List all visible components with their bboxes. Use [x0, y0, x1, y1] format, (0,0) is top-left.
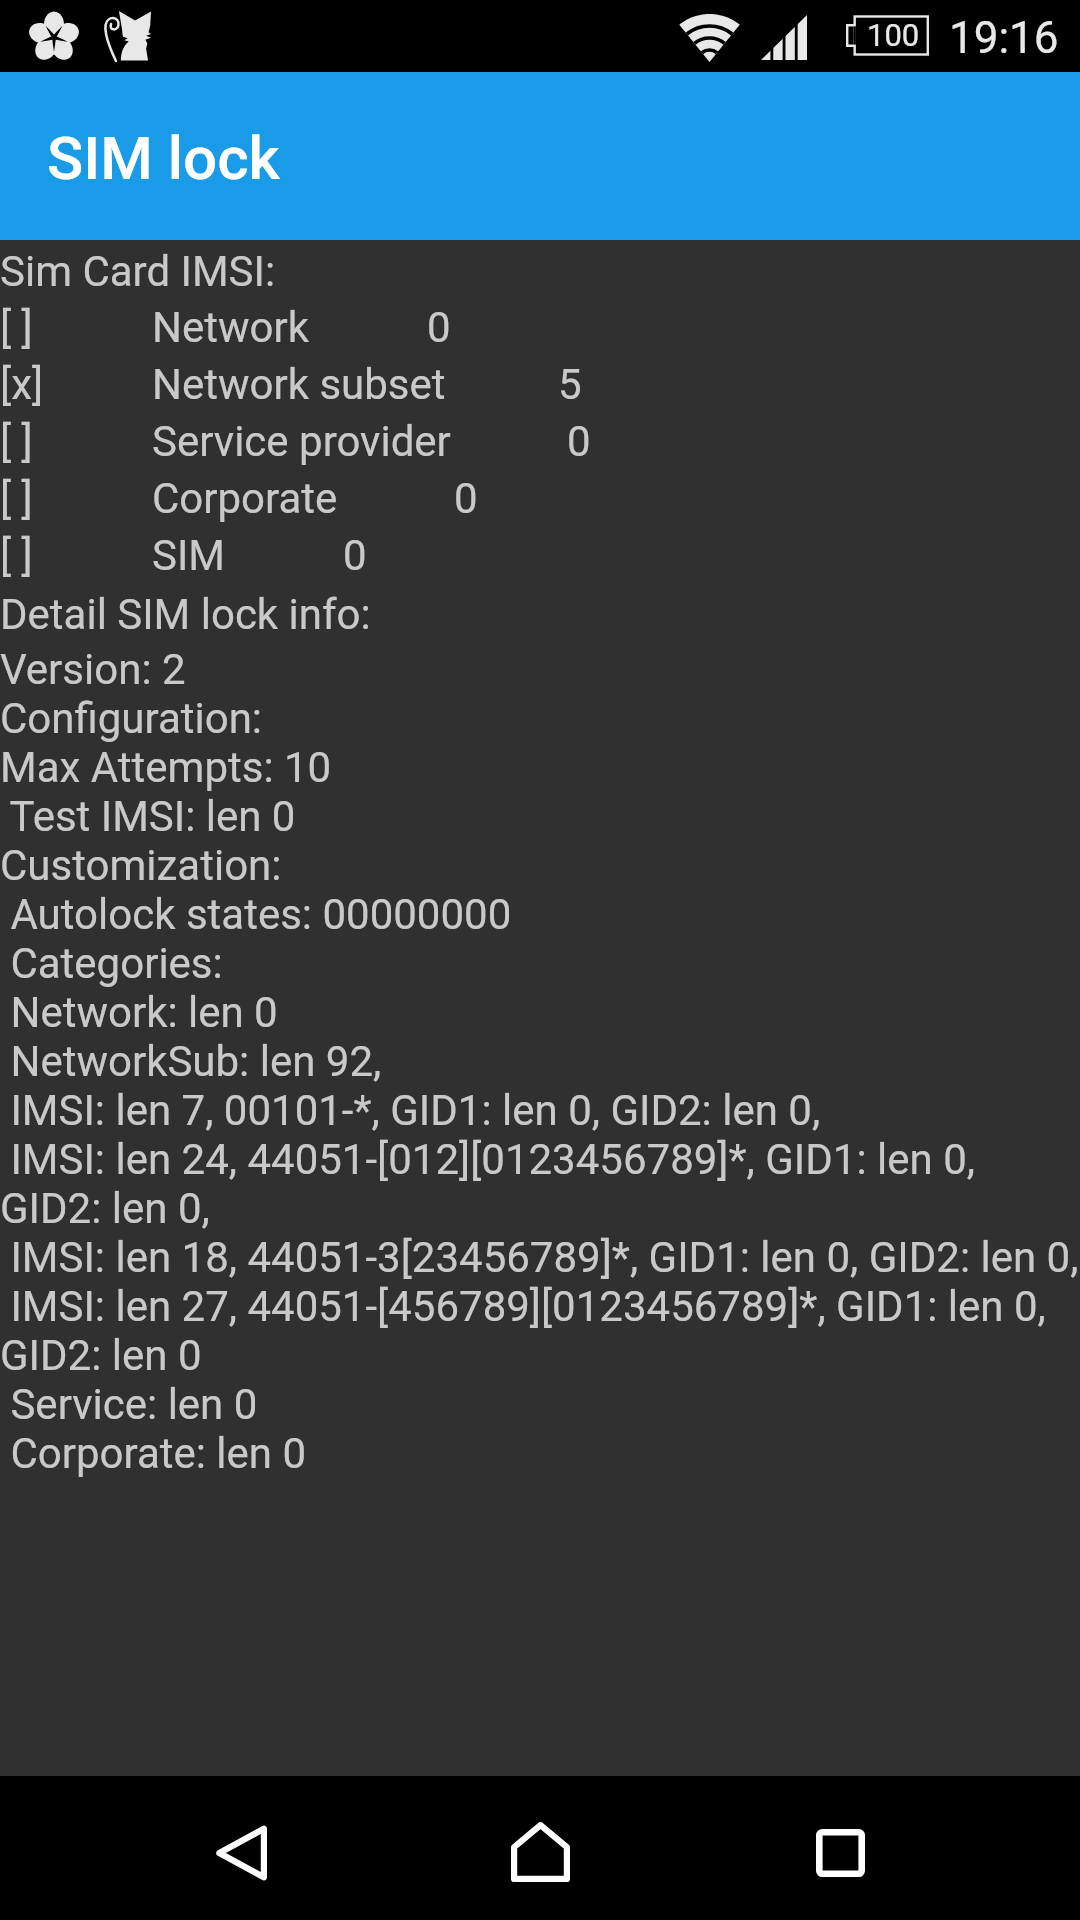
other: Wi-Fi signal full: [680, 14, 739, 62]
staticText: 0: [427, 303, 451, 352]
staticText: [ ]: [0, 303, 33, 352]
button[interactable]: [ ]: [0, 474, 1080, 530]
staticText: SIM lock: [47, 123, 280, 193]
button[interactable]: [ ]: [0, 303, 1080, 359]
button[interactable]: [x]: [0, 360, 1080, 416]
staticText: [ ]: [0, 417, 33, 466]
other: Notification: [30, 13, 78, 59]
other: Mobile signal full: [761, 15, 807, 60]
staticText: 0: [567, 417, 591, 466]
staticText: Version: 2 Configuration: Max Attempts: …: [0, 645, 1080, 1478]
staticText: 100: [867, 17, 920, 53]
staticText: SIM: [152, 531, 226, 580]
button[interactable]: [ ]: [0, 417, 1080, 473]
button[interactable]: Back: [151, 1781, 331, 1920]
button[interactable]: [ ]: [0, 531, 1080, 587]
staticText: 0: [343, 531, 367, 580]
staticText: 19:16: [949, 12, 1059, 64]
staticText: Sim Card IMSI:: [0, 247, 276, 296]
button[interactable]: Home: [450, 1780, 630, 1920]
staticText: Network: [152, 303, 310, 352]
staticText: Network subset: [152, 360, 446, 409]
staticText: [ ]: [0, 531, 33, 580]
other: Notification: [102, 10, 151, 61]
button[interactable]: Recent apps: [750, 1781, 930, 1920]
staticText: Service provider: [152, 417, 451, 466]
other: Battery 100 percent: [846, 14, 929, 57]
staticText: [x]: [0, 360, 44, 409]
staticText: Detail SIM lock info:: [0, 590, 371, 639]
staticText: Corporate: [152, 474, 338, 523]
button[interactable]: SIM lock: [0, 72, 1080, 240]
staticText: 0: [454, 474, 478, 523]
staticText: [ ]: [0, 474, 33, 523]
staticText: 5: [558, 360, 582, 409]
